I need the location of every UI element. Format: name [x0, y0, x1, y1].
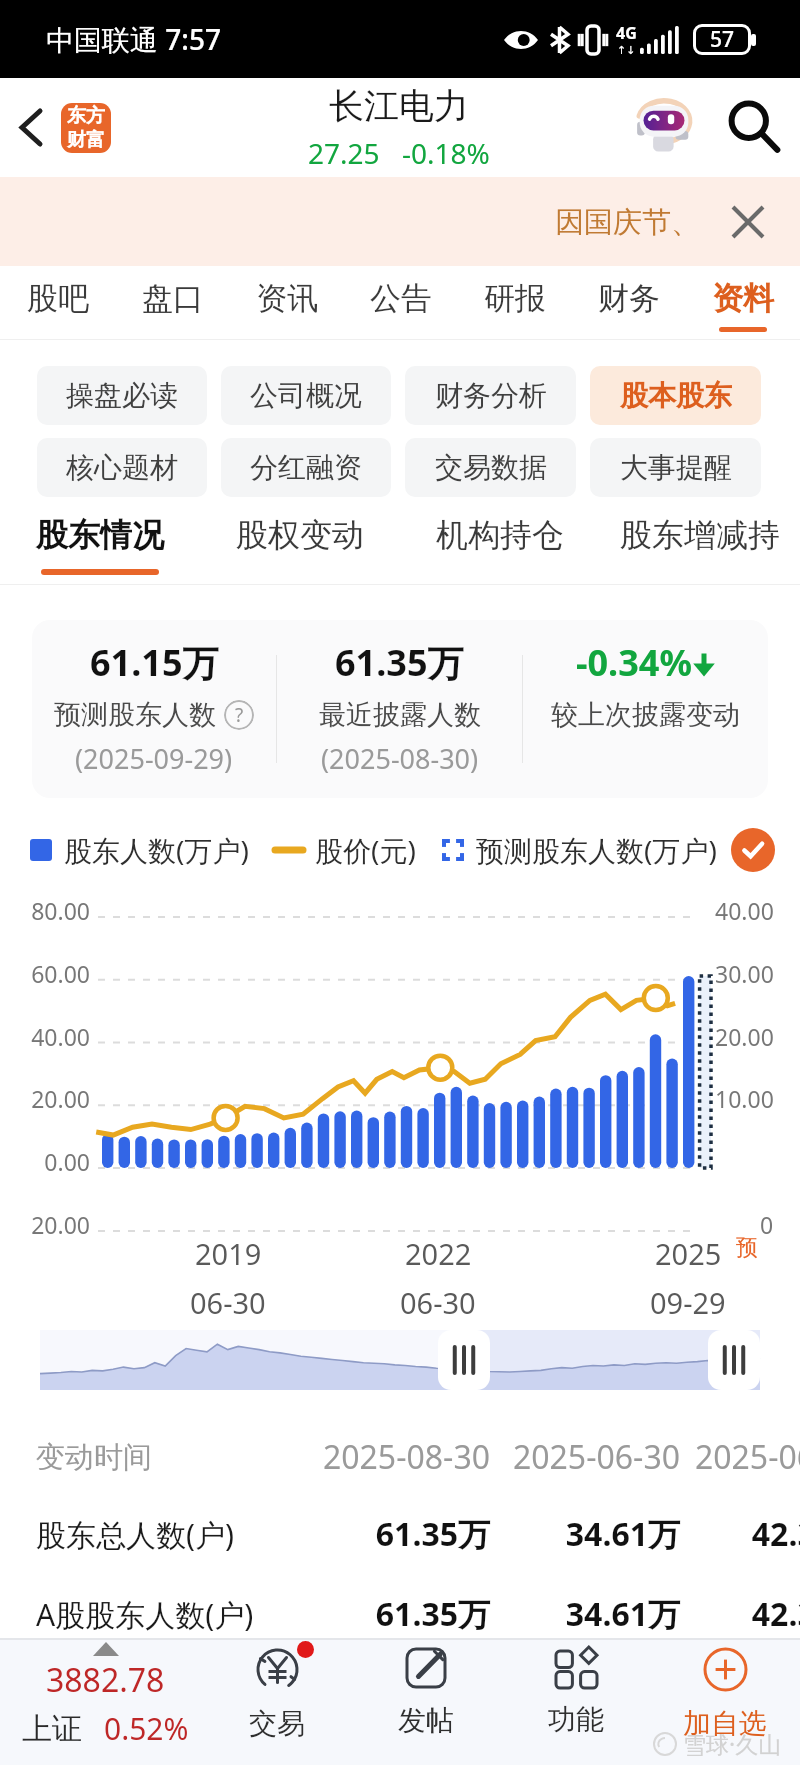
button[interactable]: 财务: [572, 266, 686, 340]
button[interactable]: Search: [714, 78, 800, 177]
button[interactable]: 机构持仓: [400, 497, 600, 585]
staticText: 机构持仓: [436, 515, 564, 555]
staticText: 股东人数(万户): [64, 831, 249, 869]
staticText: 34.61万: [490, 1592, 680, 1636]
button[interactable]: Post: [356, 1640, 496, 1765]
staticText: 变动时间: [36, 1439, 304, 1476]
staticText: 较上次披露变动: [551, 698, 740, 732]
staticText: 2025-06-30: [680, 1435, 800, 1479]
staticText: 中国联通 7:57: [46, 20, 221, 58]
button[interactable]: 分红融资: [221, 438, 391, 497]
staticText: 雪球·久山: [683, 1728, 782, 1759]
staticText: -0.34%: [576, 638, 692, 687]
staticText: 公司概况: [250, 378, 362, 413]
staticText: ?: [235, 702, 244, 728]
staticText: 09-29: [650, 1283, 726, 1322]
staticText: 公告: [370, 279, 432, 318]
button[interactable]: 财务分析: [405, 366, 576, 425]
staticText: 上证: [22, 1710, 82, 1748]
button[interactable]: 资讯: [230, 266, 344, 340]
button[interactable]: East Money home: [61, 103, 111, 153]
staticText: 2022: [405, 1234, 472, 1273]
staticText: 长江电力: [329, 84, 469, 128]
staticText: 61.35万: [335, 638, 464, 687]
staticText: 20.00: [18, 1083, 90, 1114]
staticText: 盘口: [142, 279, 204, 318]
button[interactable]: 公司概况: [221, 366, 391, 425]
staticText: 股价(元): [315, 831, 416, 869]
staticText: 2019: [195, 1234, 262, 1273]
button[interactable]: 3882.78: [0, 1640, 210, 1765]
button[interactable]: 操盘必读: [37, 366, 207, 425]
button[interactable]: 股吧: [0, 266, 115, 340]
staticText: 42.36万: [680, 1592, 800, 1636]
button[interactable]: 研报: [458, 266, 572, 340]
staticText: 财务: [598, 279, 660, 318]
button[interactable]: Range handle: [438, 1330, 490, 1390]
staticText: 股东总人数(户): [36, 1514, 304, 1555]
button[interactable]: 盘口: [115, 266, 230, 340]
button[interactable]: 大事提醒: [590, 438, 761, 497]
staticText: 股东情况: [36, 515, 164, 555]
button[interactable]: 股本股东: [590, 366, 761, 425]
staticText: 股吧: [27, 279, 89, 318]
staticText: 61.15万: [90, 638, 219, 687]
button[interactable]: Help: [224, 700, 254, 730]
button[interactable]: 交易数据: [405, 438, 576, 497]
staticText: 30.00: [715, 958, 774, 989]
staticText: 34.61万: [490, 1512, 680, 1556]
staticText: ↑↓: [617, 44, 636, 57]
staticText: 东方: [67, 104, 105, 128]
staticText: 资讯: [256, 279, 318, 318]
staticText: 核心题材: [66, 450, 178, 485]
staticText: 交易数据: [435, 450, 547, 485]
button[interactable]: Back: [0, 78, 61, 177]
button[interactable]: 股东增减持: [600, 497, 800, 585]
staticText: 分红融资: [250, 450, 362, 485]
button[interactable]: A股股东人数(户): [36, 1574, 800, 1654]
staticText: 2025-08-30: [304, 1435, 490, 1479]
staticText: 3882.78: [46, 1658, 165, 1702]
staticText: 0.52%: [104, 1708, 189, 1749]
button[interactable]: 股权变动: [200, 497, 400, 585]
staticText: 股本股东: [620, 378, 732, 413]
button[interactable]: Range handle: [708, 1330, 760, 1390]
staticText: 功能: [548, 1702, 604, 1737]
staticText: 研报: [484, 279, 546, 318]
staticText: 发帖: [398, 1703, 454, 1738]
staticText: 预: [736, 1234, 758, 1262]
button[interactable]: Close banner: [722, 196, 774, 248]
staticText: 27.25: [308, 134, 380, 172]
staticText: 4G: [616, 22, 637, 44]
staticText: 06-30: [400, 1283, 476, 1322]
staticText: 资料: [712, 279, 774, 318]
button[interactable]: 资料: [686, 266, 800, 340]
staticText: 20.00: [18, 1209, 90, 1240]
button[interactable]: 股东总人数(户): [36, 1494, 800, 1574]
staticText: 股东增减持: [620, 515, 780, 555]
staticText: 操盘必读: [66, 378, 178, 413]
button[interactable]: AI assistant: [622, 78, 714, 177]
button[interactable]: Features: [506, 1640, 646, 1765]
staticText: 10.00: [715, 1083, 774, 1114]
staticText: 财富: [67, 128, 105, 152]
staticText: 60.00: [18, 958, 90, 989]
staticText: -0.18%: [402, 134, 490, 172]
staticText: 0.00: [18, 1146, 90, 1177]
staticText: (2025-09-29): [75, 740, 233, 777]
staticText: 交易: [249, 1706, 305, 1741]
staticText: 预测股东人数(万户): [476, 831, 717, 869]
button[interactable]: 公告: [344, 266, 458, 340]
staticText: 大事提醒: [620, 450, 732, 485]
staticText: 因国庆节、: [555, 204, 700, 241]
button[interactable]: Toggle forecast series: [731, 828, 775, 872]
staticText: A股股东人数(户): [36, 1594, 304, 1635]
button[interactable]: 股东情况: [0, 497, 200, 585]
staticText: 40.00: [715, 895, 774, 926]
staticText: 80.00: [18, 895, 90, 926]
button[interactable]: 核心题材: [37, 438, 207, 497]
staticText: 20.00: [715, 1021, 774, 1052]
button[interactable]: Trade: [207, 1640, 347, 1765]
staticText: (2025-08-30): [321, 740, 479, 777]
button[interactable]: Add to watchlist: [655, 1640, 795, 1765]
